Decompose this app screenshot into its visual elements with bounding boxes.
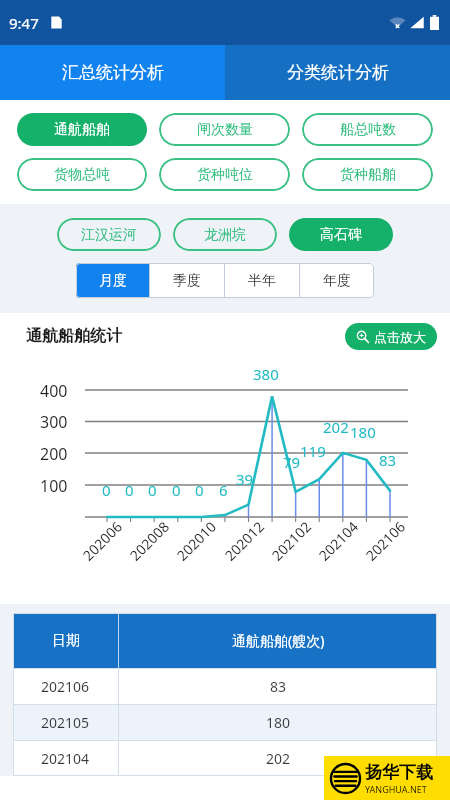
staticText: 202106	[41, 677, 90, 696]
staticText: 180	[266, 713, 291, 732]
staticText: 202104	[41, 749, 90, 768]
button[interactable]: 通航船舶	[17, 113, 147, 146]
button[interactable]: Zoom in	[345, 323, 437, 350]
other: Zoom in	[356, 330, 369, 343]
staticText: 0	[148, 480, 157, 500]
staticText: 年度	[323, 272, 351, 290]
staticText: 日期	[52, 632, 80, 650]
staticText: 400	[40, 380, 68, 402]
staticText: 0	[172, 480, 181, 500]
staticText: 83	[270, 677, 287, 696]
button[interactable]: 货种船舶	[302, 158, 433, 191]
staticText: 200	[40, 443, 68, 465]
button[interactable]: 高石碑	[289, 218, 393, 251]
button[interactable]: 202105	[13, 705, 437, 740]
staticText: 高石碑	[320, 226, 362, 244]
staticText: 39	[236, 469, 254, 489]
staticText: 点击放大	[374, 329, 426, 345]
staticText: 龙洲垸	[204, 226, 246, 244]
staticText: 0	[195, 480, 204, 500]
staticText: 货物总吨	[54, 166, 110, 184]
staticText: 0	[102, 480, 111, 500]
button[interactable]: 汇总统计分析	[0, 45, 225, 100]
staticText: 380	[253, 364, 279, 384]
staticText: 202	[266, 749, 291, 768]
button[interactable]: 船总吨数	[302, 113, 433, 146]
staticText: 300	[40, 411, 68, 433]
staticText: 季度	[173, 272, 201, 290]
staticText: 货种船舶	[340, 166, 396, 184]
button[interactable]: 月度	[76, 263, 149, 298]
staticText: 119	[300, 441, 326, 461]
staticText: 202105	[41, 713, 90, 732]
staticText: 汇总统计分析	[62, 62, 164, 83]
staticText: 通航船舶统计	[26, 326, 122, 346]
staticText: 通航船舶(艘次)	[232, 631, 325, 650]
staticText: 半年	[248, 272, 276, 290]
staticText: YANGHUA.NET	[365, 783, 427, 795]
button[interactable]: 闸次数量	[159, 113, 290, 146]
staticText: 月度	[99, 272, 127, 290]
staticText: 闸次数量	[197, 121, 253, 139]
staticText: 9:47	[9, 13, 39, 33]
button[interactable]: 分类统计分析	[225, 45, 450, 100]
button[interactable]: 龙洲垸	[173, 218, 277, 251]
staticText: 分类统计分析	[287, 62, 389, 83]
staticText: 货种吨位	[197, 166, 253, 184]
staticText: 180	[350, 422, 376, 442]
staticText: 江汉运河	[81, 226, 137, 244]
staticText: 船总吨数	[340, 121, 396, 139]
staticText: 通航船舶	[54, 121, 110, 139]
staticText: 扬华下载	[365, 762, 433, 783]
staticText: 83	[379, 450, 397, 470]
staticText: 202006	[78, 516, 127, 565]
staticText: 0	[125, 480, 134, 500]
button[interactable]: 202106	[13, 669, 437, 704]
button[interactable]: 货种吨位	[159, 158, 290, 191]
staticText: 202106	[361, 516, 410, 565]
button[interactable]: 半年	[225, 263, 299, 298]
button[interactable]: 年度	[300, 263, 374, 298]
staticText: 100	[40, 475, 68, 497]
button[interactable]: 江汉运河	[57, 218, 161, 251]
button[interactable]: 货物总吨	[17, 158, 147, 191]
button[interactable]: 季度	[150, 263, 224, 298]
button[interactable]: 202104	[13, 741, 437, 776]
staticText: 6	[219, 480, 228, 500]
staticText: 79	[283, 452, 301, 472]
staticText: 202	[323, 417, 349, 437]
staticText: 202012	[220, 516, 269, 565]
staticText: 202008	[125, 516, 174, 565]
staticText: 202010	[172, 516, 221, 565]
staticText: 202104	[314, 516, 363, 565]
staticText: 202102	[267, 516, 316, 565]
